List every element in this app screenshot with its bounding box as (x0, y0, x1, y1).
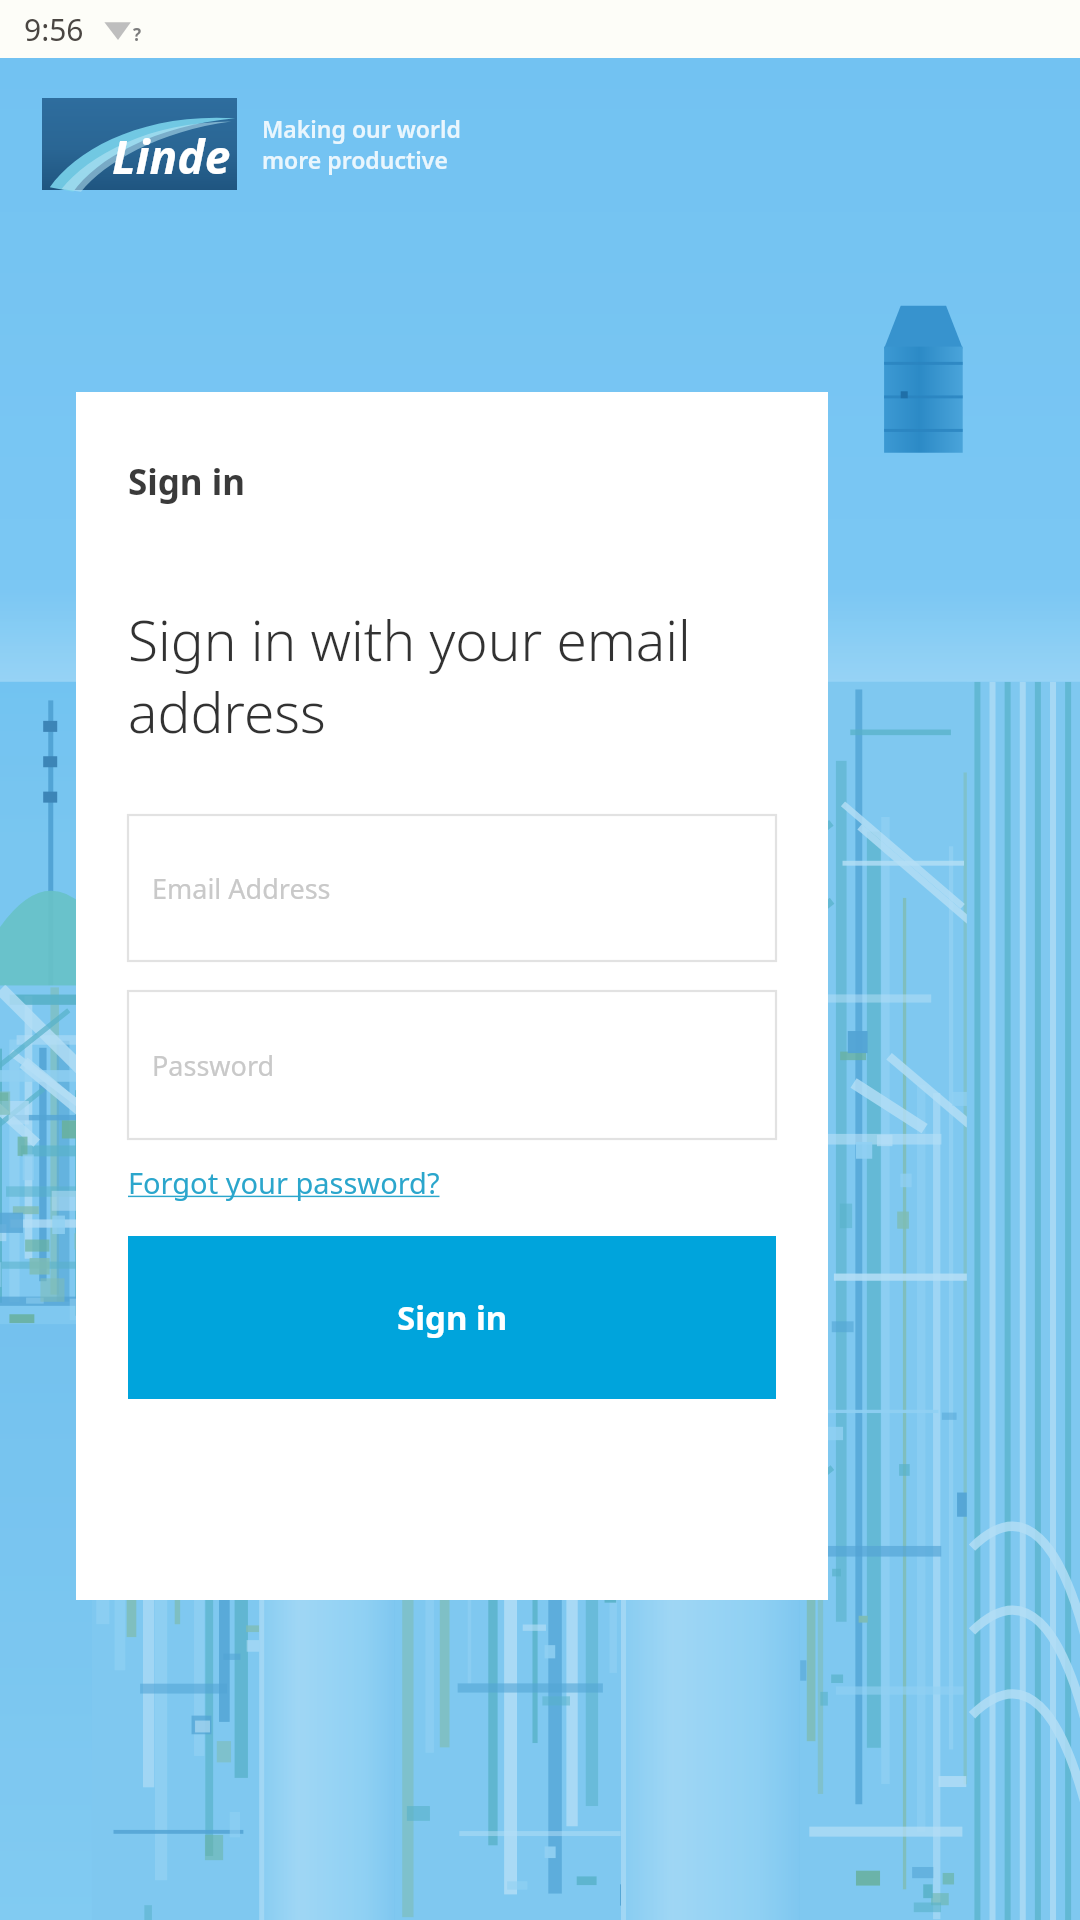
button[interactable]: Forgot your password? (128, 1163, 440, 1202)
button[interactable]: Password (128, 991, 776, 1139)
staticText: Sign in with your email address (128, 602, 691, 749)
staticText: Sign in (128, 458, 245, 506)
staticText: Making our world (262, 113, 461, 144)
staticText: Email Address (152, 870, 331, 907)
other: Linde logo (42, 98, 237, 190)
staticText: 9:56 (24, 9, 84, 50)
button[interactable]: Email Address (128, 815, 776, 961)
staticText: Password (152, 1047, 275, 1084)
staticText: ? (133, 23, 142, 46)
staticText: Sign in (397, 1295, 508, 1340)
staticText: Linde (112, 125, 231, 188)
button[interactable]: Sign in (128, 1236, 776, 1399)
staticText: more productive (262, 144, 448, 175)
